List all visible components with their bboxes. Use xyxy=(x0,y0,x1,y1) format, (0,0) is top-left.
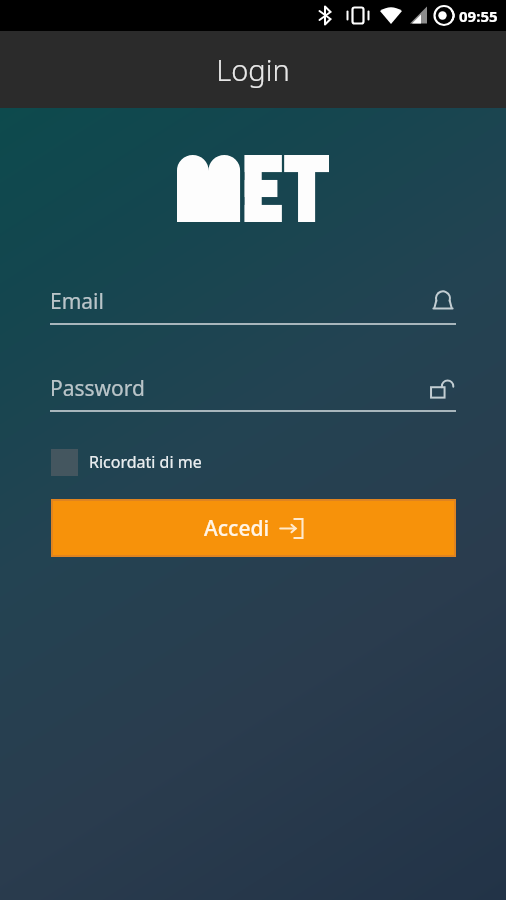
button[interactable]: Accedi xyxy=(53,501,454,555)
staticText: Login xyxy=(216,50,290,89)
button[interactable]: Password xyxy=(50,368,456,412)
button[interactable]: Email xyxy=(50,281,456,325)
staticText: 09:55 xyxy=(459,6,498,26)
button[interactable]: Ricordati di me xyxy=(51,446,202,478)
staticText: Password xyxy=(50,374,145,403)
staticText: Accedi xyxy=(204,514,270,543)
staticText: Email xyxy=(50,287,104,316)
staticText: Ricordati di me xyxy=(89,451,202,473)
